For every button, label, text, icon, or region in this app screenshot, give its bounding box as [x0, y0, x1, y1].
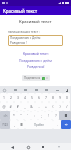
button[interactable]: More: [55, 88, 59, 92]
button[interactable]: :: [31, 111, 38, 120]
staticText: Рождения!: [27, 64, 45, 69]
button[interactable]: -: [35, 102, 42, 111]
button[interactable]: 3: [14, 93, 21, 102]
staticText: 4: [24, 95, 26, 100]
staticText: /: [66, 104, 68, 109]
staticText: Красивый текст:: [23, 52, 49, 56]
staticText: Рождения !: [10, 41, 27, 45]
staticText: ': [27, 113, 28, 118]
staticText: @: [2, 104, 6, 109]
button[interactable]: Hide keyboard: [56, 144, 62, 150]
button[interactable]: Google: [2, 88, 6, 92]
button[interactable]: ,: [10, 120, 18, 129]
staticText: ?: [55, 113, 57, 118]
button[interactable]: Voice input: [65, 88, 69, 92]
button[interactable]: Key: [18, 120, 25, 129]
staticText: Поделиться: [24, 76, 41, 80]
button[interactable]: ?: [52, 111, 59, 120]
button[interactable]: ₽: [14, 102, 21, 111]
staticText: !: [48, 113, 49, 118]
staticText: :: [34, 113, 35, 118]
staticText: (: [52, 104, 54, 109]
button[interactable]: ;: [38, 111, 45, 120]
staticText: Поздравляю с Днём: [10, 36, 41, 40]
button[interactable]: Поздравляю с Днём: [8, 35, 63, 46]
staticText: Пробел: [34, 123, 44, 127]
staticText: Поздравляю с днём: [19, 58, 52, 63]
button[interactable]: *: [10, 111, 17, 120]
button[interactable]: Пробел: [25, 120, 53, 129]
button[interactable]: 7: [42, 93, 49, 102]
button[interactable]: /: [63, 102, 70, 111]
button[interactable]: 9: [56, 93, 63, 102]
staticText: *: [13, 113, 15, 118]
staticText: _: [24, 104, 26, 109]
staticText: 2: [10, 95, 12, 100]
staticText: &: [30, 104, 33, 109]
button[interactable]: 4: [21, 93, 28, 102]
button[interactable]: ': [24, 111, 31, 120]
staticText: .: [57, 122, 58, 127]
staticText: #: [9, 104, 12, 109]
button[interactable]: ?123: [0, 120, 10, 129]
button[interactable]: _: [21, 102, 28, 111]
button[interactable]: #: [7, 102, 14, 111]
button[interactable]: Красивый текст: [0, 6, 71, 15]
staticText: 6: [38, 95, 40, 100]
staticText: ,: [14, 122, 15, 127]
button[interactable]: 6: [35, 93, 42, 102]
staticText: ): [59, 104, 61, 109]
button[interactable]: Sticker: [23, 88, 27, 92]
staticText: 0: [66, 95, 68, 100]
staticText: +: [45, 104, 47, 109]
staticText: 1: [3, 95, 5, 100]
button[interactable]: 5: [28, 93, 35, 102]
staticText: ₽: [17, 104, 19, 109]
button[interactable]: Home: [25, 144, 31, 150]
button[interactable]: .: [53, 120, 61, 129]
staticText: ?123: [2, 123, 8, 127]
button[interactable]: Key: [61, 120, 71, 129]
staticText: -: [38, 104, 40, 109]
button[interactable]: Back: [9, 144, 15, 150]
staticText: 8: [52, 95, 54, 100]
staticText: ;: [41, 113, 42, 118]
button[interactable]: Key: [59, 111, 71, 120]
button[interactable]: 1: [0, 93, 7, 102]
staticText: 5: [31, 95, 33, 100]
button[interactable]: @: [0, 102, 7, 111]
staticText: 3: [17, 95, 19, 100]
staticText: =\<: [3, 114, 8, 118]
staticText: 9: [59, 95, 61, 100]
button[interactable]: (: [49, 102, 56, 111]
staticText: напиши ваших текст :: [8, 30, 40, 34]
staticText: Красивый текст: [19, 19, 52, 25]
button[interactable]: 0: [63, 93, 70, 102]
button[interactable]: ): [56, 102, 63, 111]
button[interactable]: !: [45, 111, 52, 120]
button[interactable]: =\<: [0, 111, 10, 120]
button[interactable]: +: [42, 102, 49, 111]
button[interactable]: ": [17, 111, 24, 120]
button[interactable]: Поделиться: [22, 75, 50, 81]
button[interactable]: 8: [49, 93, 56, 102]
staticText: 7: [45, 95, 47, 100]
button[interactable]: Clipboard: [44, 88, 48, 92]
staticText: Красивый текст: [3, 8, 38, 14]
button[interactable]: &: [28, 102, 35, 111]
staticText: ": [20, 113, 22, 118]
button[interactable]: Search: [13, 88, 17, 92]
button[interactable]: 2: [7, 93, 14, 102]
button[interactable]: Recents: [40, 144, 46, 150]
button[interactable]: GIF: [34, 88, 38, 92]
